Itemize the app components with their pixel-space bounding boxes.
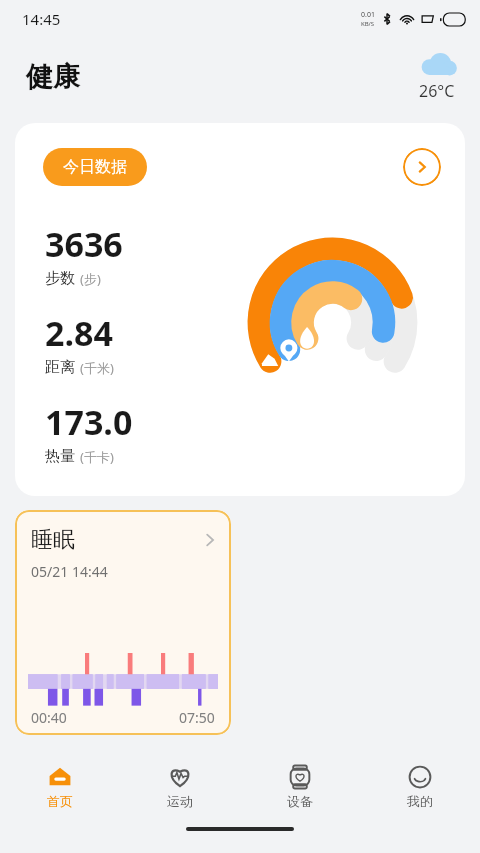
staticText: 3636 — [45, 221, 123, 267]
staticText: 首页 — [47, 793, 73, 809]
staticText: 热量 — [45, 447, 75, 466]
staticText: KB/S — [361, 20, 375, 28]
staticText: 运动 — [167, 793, 193, 809]
staticText: 05/21 14:44 — [31, 562, 108, 581]
staticText: 14:45 — [22, 9, 61, 29]
staticText: (千卡) — [80, 448, 114, 466]
button[interactable]: 我的 — [360, 755, 480, 817]
staticText: 173.0 — [45, 399, 133, 445]
staticText: 2.84 — [45, 310, 113, 356]
staticText: 0.01 — [361, 10, 375, 20]
button[interactable]: 首页 — [0, 755, 120, 817]
button[interactable]: 更多 — [403, 148, 441, 186]
button[interactable]: 睡眠 — [15, 510, 231, 735]
staticText: 今日数据 — [63, 157, 127, 177]
staticText: (千米) — [80, 359, 114, 377]
staticText: 睡眠 — [31, 526, 75, 554]
staticText: 26°C — [419, 80, 455, 102]
staticText: 我的 — [407, 793, 433, 809]
staticText: 步数 — [45, 269, 75, 288]
button[interactable]: 运动 — [120, 755, 240, 817]
button[interactable]: 今日数据 — [43, 148, 147, 186]
staticText: 00:40 — [31, 708, 67, 727]
button[interactable]: 设备 — [240, 755, 360, 817]
staticText: 健康 — [26, 60, 80, 94]
staticText: 设备 — [287, 793, 313, 809]
staticText: (步) — [80, 270, 101, 288]
staticText: 07:50 — [179, 708, 215, 727]
staticText: 距离 — [45, 358, 75, 377]
